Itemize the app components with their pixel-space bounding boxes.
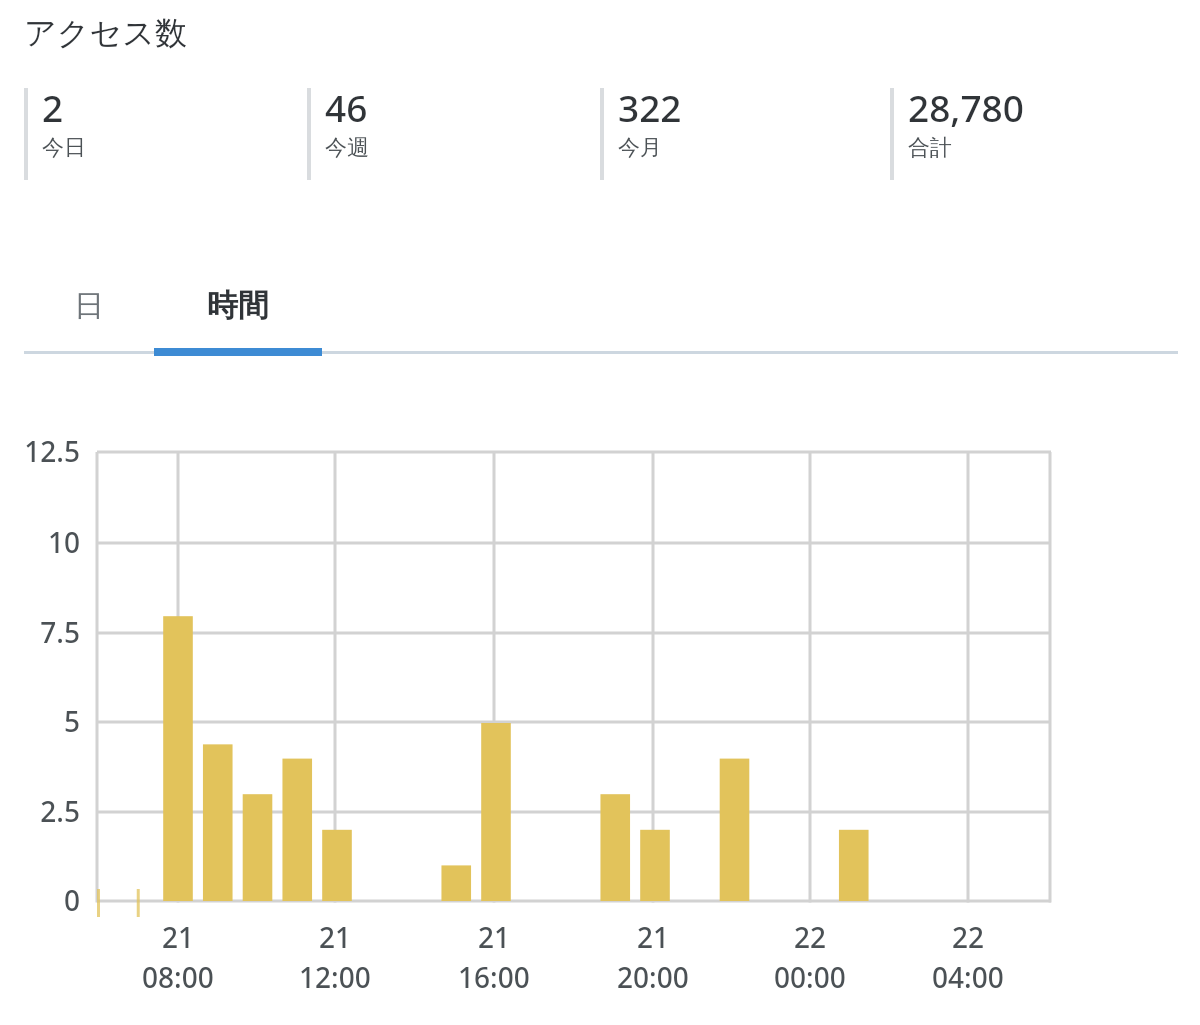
staticText: 10 [47,523,80,561]
staticText: 5 [63,702,80,740]
staticText: 16:00 [458,958,530,996]
staticText: 21 [319,918,352,956]
button[interactable]: 日 [24,258,154,353]
staticText: 日 [74,287,104,325]
button[interactable]: 時間 [154,258,322,353]
staticText: アクセス数 [24,13,187,53]
staticText: 0 [63,881,80,919]
staticText: 今月 [618,134,662,162]
staticText: 22 [952,918,985,956]
staticText: 00:00 [774,958,846,996]
staticText: 08:00 [142,958,214,996]
staticText: 20:00 [617,958,689,996]
staticText: 21 [478,918,511,956]
staticText: 22 [794,918,827,956]
staticText: 今日 [42,134,86,162]
staticText: 今週 [325,134,369,162]
staticText: 時間 [207,286,269,325]
staticText: 46 [325,82,368,132]
staticText: 21 [637,918,670,956]
staticText: 7.5 [40,613,80,651]
staticText: 2 [42,82,64,132]
staticText: 12.5 [24,432,80,470]
staticText: 2.5 [40,792,80,830]
staticText: 04:00 [932,958,1004,996]
staticText: 12:00 [299,958,371,996]
staticText: 28,780 [908,82,1024,132]
staticText: 21 [162,918,195,956]
staticText: 322 [618,82,682,132]
staticText: 合計 [908,134,952,162]
